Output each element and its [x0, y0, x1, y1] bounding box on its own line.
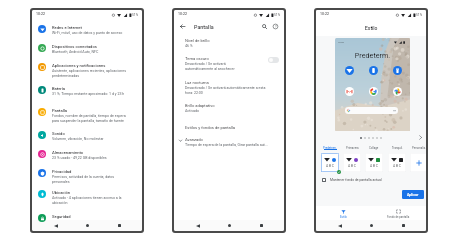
button[interactable]: Tema oscuro — [268, 57, 279, 63]
staticText: Collage — [369, 146, 379, 149]
button[interactable]: Dispositivos conectados — [32, 44, 142, 54]
button[interactable] — [410, 153, 426, 172]
staticText: Avanzado — [185, 137, 203, 142]
button[interactable]: Search — [260, 22, 269, 31]
staticText: Mantener fondo de pantalla actual — [330, 178, 382, 182]
button[interactable]: Back — [48, 220, 64, 231]
button[interactable]: Mantener fondo de pantalla actual — [316, 178, 426, 182]
staticText: Predeterm. — [335, 51, 410, 59]
button[interactable]: A B C — [343, 153, 361, 172]
button[interactable]: Aplicar — [402, 190, 424, 199]
button[interactable]: Tranquil. — [388, 146, 406, 149]
staticText: 10:22 — [36, 12, 45, 16]
staticText: Permisos, actividad de la cuenta, datos … — [52, 175, 131, 184]
button[interactable]: Collage — [365, 146, 383, 149]
button[interactable]: Pantalla — [32, 108, 142, 123]
staticText: Fondo de pantalla — [387, 215, 410, 218]
staticText: 23 % usado - 49,22 GB disponibles — [52, 156, 107, 160]
button[interactable]: Ubicación — [32, 190, 142, 205]
button[interactable]: Siguiente — [416, 133, 424, 141]
button[interactable]: Primavera — [343, 146, 361, 149]
button[interactable]: Tema oscuro — [174, 56, 284, 71]
staticText: 31 %; Tiempo restante aproximado: 1 d y … — [52, 92, 125, 96]
button[interactable]: Vista previa del estilo — [335, 38, 410, 131]
button[interactable]: Home — [363, 220, 379, 231]
button[interactable]: Recent apps — [253, 220, 269, 231]
staticText: Desactivado / Se activará automáticament… — [185, 62, 235, 71]
button[interactable]: Brillo adaptativo — [174, 103, 284, 113]
button[interactable]: Back — [332, 220, 348, 231]
staticText: ? — [275, 25, 277, 29]
staticText: Tranquil. — [392, 146, 403, 149]
staticText: Sonido — [52, 131, 65, 136]
button[interactable]: A B C — [388, 153, 406, 172]
button[interactable]: Personaliz. — [410, 146, 426, 149]
staticText: Batería — [52, 86, 66, 91]
staticText: Almacenamiento — [52, 150, 84, 155]
staticText: A B C — [388, 164, 406, 168]
staticText: Pantalla — [52, 108, 67, 113]
button[interactable]: Aplicaciones y notificaciones — [32, 63, 142, 78]
staticText: 10:22 — [338, 41, 344, 44]
staticText: Estilo — [365, 25, 378, 31]
staticText: Dispositivos conectados — [52, 44, 97, 49]
staticText: 51% — [274, 13, 281, 17]
staticText: Pantalla — [194, 24, 214, 30]
button[interactable]: Privacidad — [32, 169, 142, 184]
staticText: A B C — [365, 164, 383, 168]
staticText: Tiempo de espera de la pantalla, Girar p… — [185, 143, 268, 147]
staticText: Estilos y fondos de pantalla — [185, 125, 236, 130]
button[interactable]: Back — [190, 220, 206, 231]
staticText: 46 % — [185, 44, 193, 48]
staticText: Redes e Internet — [52, 25, 82, 30]
staticText: Primavera — [346, 146, 359, 149]
staticText: Activado — [185, 109, 200, 113]
staticText: A B C — [321, 164, 339, 168]
staticText: 51% — [416, 13, 423, 17]
staticText: Wi-Fi, móvil, uso de datos y punto de ac… — [52, 31, 123, 35]
button[interactable]: Predeterm. — [321, 146, 339, 150]
staticText: Bluetooth, Android Auto, NFC — [52, 50, 99, 54]
button[interactable]: Batería — [32, 86, 142, 96]
staticText: Estilo — [340, 215, 347, 218]
button[interactable]: Home — [79, 220, 95, 231]
staticText: Predeterm. — [323, 146, 337, 149]
staticText: Asistente, aplicaciones recientes, aplic… — [52, 69, 131, 78]
button[interactable]: Recent apps — [395, 220, 411, 231]
button[interactable]: Back — [178, 22, 187, 31]
staticText: Aplicar — [407, 193, 419, 197]
button[interactable]: Home — [221, 220, 237, 231]
staticText: Volumen, vibración, No molestar — [52, 137, 104, 141]
button[interactable]: Seguridad — [32, 214, 142, 222]
staticText: Brillo adaptativo — [185, 103, 215, 108]
button[interactable]: Almacenamiento — [32, 150, 142, 160]
button[interactable]: Ayuda — [271, 22, 280, 31]
button[interactable]: Luz nocturna — [174, 80, 284, 95]
staticText: Tema oscuro — [185, 56, 209, 61]
staticText: Activado - 4 aplicaciones tienen acceso … — [52, 196, 131, 205]
staticText: Privacidad — [52, 169, 72, 174]
button[interactable]: A B C — [321, 153, 339, 172]
staticText: Personaliz. — [412, 146, 426, 149]
staticText: Fondos, nombre de pantalla, tiempo de es… — [52, 114, 131, 123]
staticText: Nivel de brillo — [185, 38, 210, 43]
button[interactable]: Avanzado — [174, 137, 284, 147]
button[interactable]: Nivel de brillo — [174, 38, 284, 48]
staticText: Desactivado / Se activará automáticament… — [185, 86, 266, 95]
staticText: A B C — [343, 164, 361, 168]
staticText: 10:22 — [178, 12, 187, 16]
button[interactable]: A B C — [365, 153, 383, 172]
button[interactable]: Redes e Internet — [32, 25, 142, 35]
staticText: Luz nocturna — [185, 80, 209, 85]
staticText: Aplicaciones y notificaciones — [52, 63, 106, 68]
button[interactable]: Estilo — [316, 206, 371, 220]
button[interactable]: Fondo de pantalla — [371, 206, 426, 220]
staticText: Ubicación — [52, 190, 71, 195]
staticText: 10:22 — [320, 12, 329, 16]
staticText: Seguridad — [52, 214, 71, 219]
button[interactable]: Sonido — [32, 131, 142, 141]
button[interactable]: Estilos y fondos de pantalla — [174, 125, 284, 130]
staticText: 51% — [132, 13, 139, 17]
button[interactable]: Recent apps — [111, 220, 127, 231]
